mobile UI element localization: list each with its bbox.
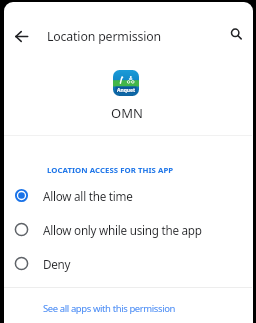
staticText: Allow only while using the app bbox=[43, 222, 202, 238]
staticText: See all apps with this permission bbox=[43, 302, 176, 315]
button[interactable]: Deny bbox=[4, 247, 252, 280]
staticText: Deny bbox=[43, 256, 71, 272]
button[interactable] bbox=[6, 21, 36, 51]
staticText: Anquet bbox=[117, 87, 136, 94]
staticText: Allow all the time bbox=[43, 188, 133, 204]
button[interactable] bbox=[221, 18, 251, 48]
button[interactable]: See all apps with this permission bbox=[38, 298, 171, 318]
button[interactable]: Allow all the time bbox=[4, 179, 252, 212]
staticText: Location permission bbox=[47, 28, 161, 45]
button[interactable]: Allow only while using the app bbox=[4, 213, 252, 246]
staticText: LOCATION ACCESS FOR THIS APP bbox=[47, 165, 174, 176]
staticText: OMN bbox=[111, 104, 143, 122]
